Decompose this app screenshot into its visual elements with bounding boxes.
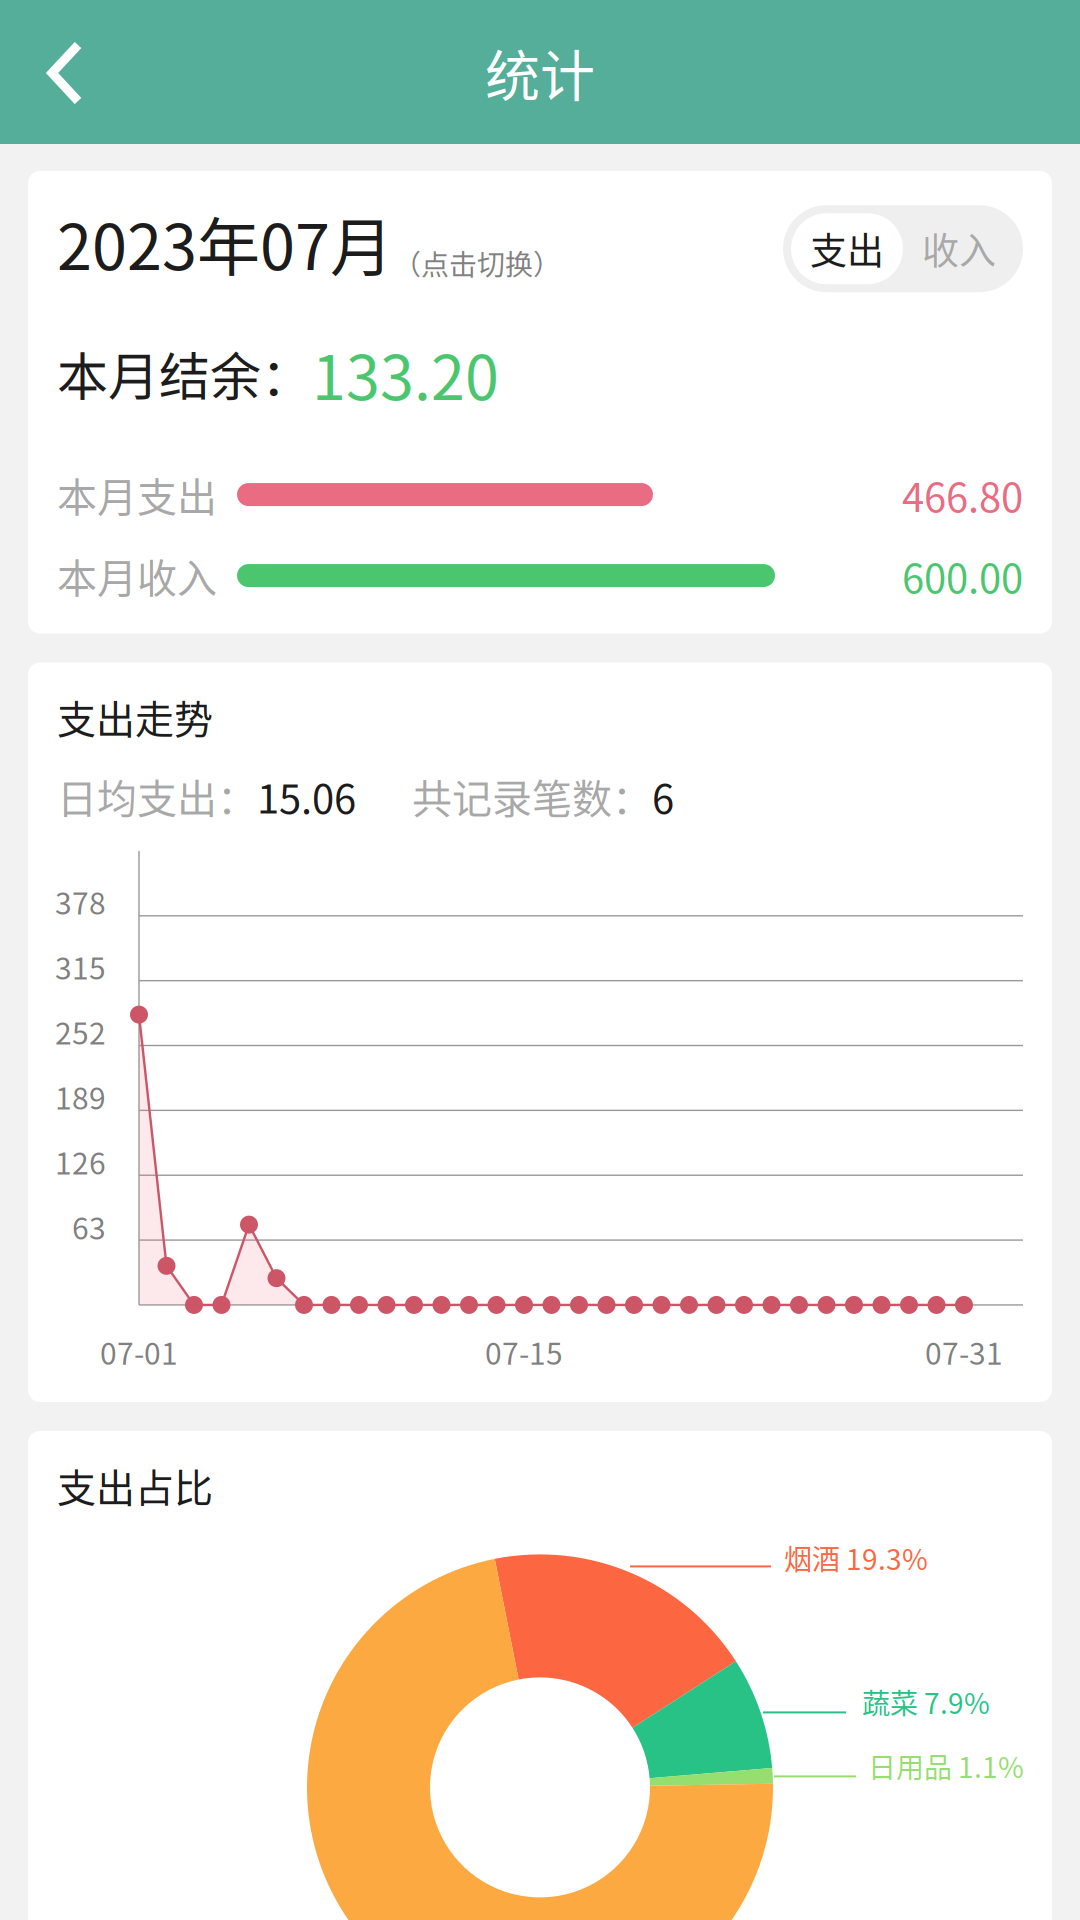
staticText: 收入: [922, 222, 996, 275]
staticText: 支出: [810, 222, 884, 275]
staticText: 133.20: [312, 329, 499, 417]
staticText: 126: [55, 1140, 106, 1183]
staticText: （点击切换）: [393, 243, 561, 283]
staticText: 支出占比: [57, 1457, 213, 1513]
staticText: 07-01: [100, 1330, 178, 1373]
staticText: 315: [55, 945, 106, 988]
staticText: 63: [72, 1205, 106, 1248]
staticText: 6: [652, 767, 674, 825]
staticText: 15.06: [257, 767, 356, 825]
staticText: 支出走势: [57, 689, 213, 745]
staticText: 烟酒 19.3%: [784, 1537, 928, 1578]
staticText: 本月收入: [57, 547, 217, 604]
staticText: 252: [55, 1010, 106, 1053]
staticText: 466.80: [902, 466, 1023, 523]
button[interactable]: 支出: [783, 205, 1023, 292]
staticText: 日用品 1.1%: [868, 1745, 1024, 1786]
staticText: 2023年07月: [57, 197, 393, 288]
staticText: 07-31: [925, 1330, 1003, 1373]
staticText: 378: [55, 880, 106, 923]
staticText: 本月结余：: [57, 336, 312, 410]
staticText: 189: [55, 1075, 106, 1118]
staticText: 共记录笔数：: [412, 767, 652, 825]
staticText: 统计: [485, 32, 595, 112]
button[interactable]: Back: [0, 0, 132, 144]
staticText: 蔬菜 7.9%: [862, 1681, 990, 1722]
staticText: 日均支出：: [57, 767, 257, 825]
staticText: 本月支出: [57, 466, 217, 523]
staticText: 600.00: [902, 547, 1023, 604]
staticText: 07-15: [485, 1330, 563, 1373]
